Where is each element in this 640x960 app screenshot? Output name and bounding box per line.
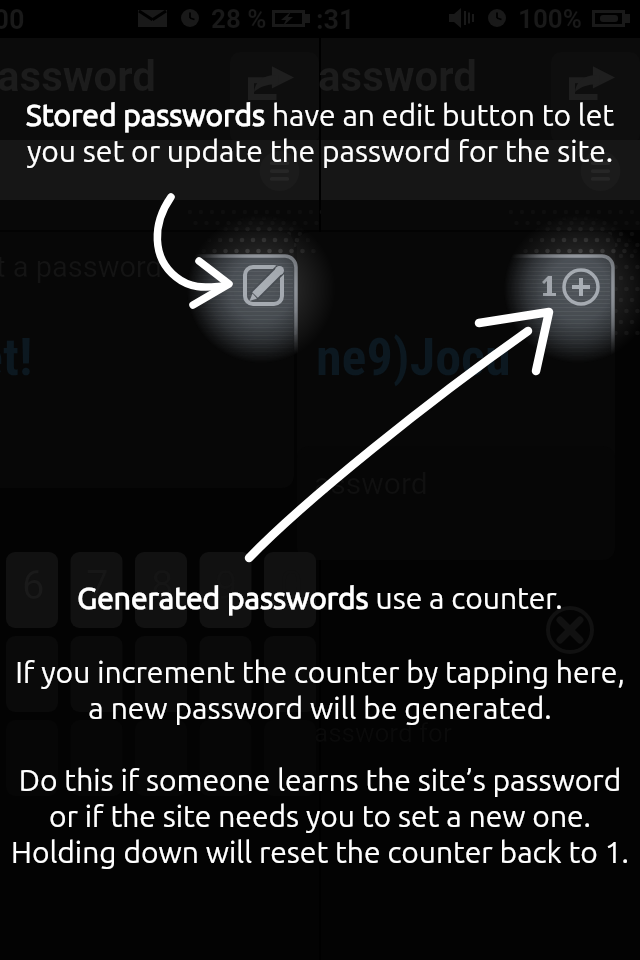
staticText: ne9)Jocu [316,327,511,388]
staticText: Generated passwords use a counter. [0,581,640,615]
staticText: assword [314,466,428,501]
staticText: 0 [280,562,303,609]
staticText: assword [0,52,156,101]
staticText: assword for [314,718,452,748]
staticText: :31 [316,4,355,36]
staticText: 28 % [211,4,267,34]
staticText: Stored passwords have an edit button to … [0,98,640,168]
staticText: t a password [0,250,162,284]
staticText: et! [0,327,33,388]
staticText: Do this if someone learns the site’s pas… [0,763,640,869]
staticText: :00 [0,4,25,36]
staticText: 8 [151,562,174,609]
staticText: 6 [22,562,45,609]
staticText: 100% [518,4,582,34]
staticText: 7 [86,562,109,609]
staticText: If you increment the counter by tapping … [0,655,640,725]
staticText: 9 [215,562,238,609]
staticText: assword [318,52,477,101]
